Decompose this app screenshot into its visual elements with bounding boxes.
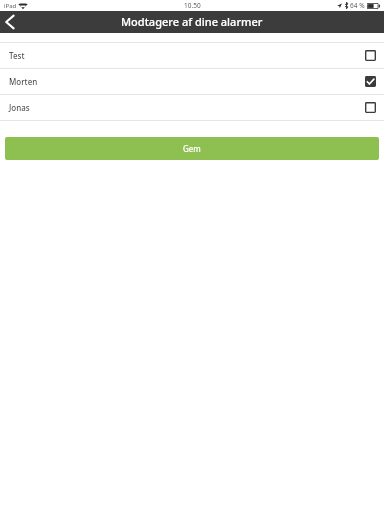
staticText: Modtagere af dine alarmer xyxy=(121,14,263,29)
staticText: iPad xyxy=(4,2,17,10)
staticText: Jonas xyxy=(9,102,30,113)
button[interactable]: Gem xyxy=(5,137,379,160)
staticText: Gem xyxy=(183,143,201,154)
button[interactable]: Jonas xyxy=(0,94,384,120)
staticText: Morten xyxy=(9,76,38,87)
button[interactable]: Morten xyxy=(0,68,384,94)
staticText: 64 % xyxy=(350,1,365,10)
button[interactable]: Back xyxy=(0,11,22,33)
staticText: 10.50 xyxy=(184,1,201,10)
staticText: Test xyxy=(9,50,25,61)
button[interactable]: Test xyxy=(0,42,384,68)
